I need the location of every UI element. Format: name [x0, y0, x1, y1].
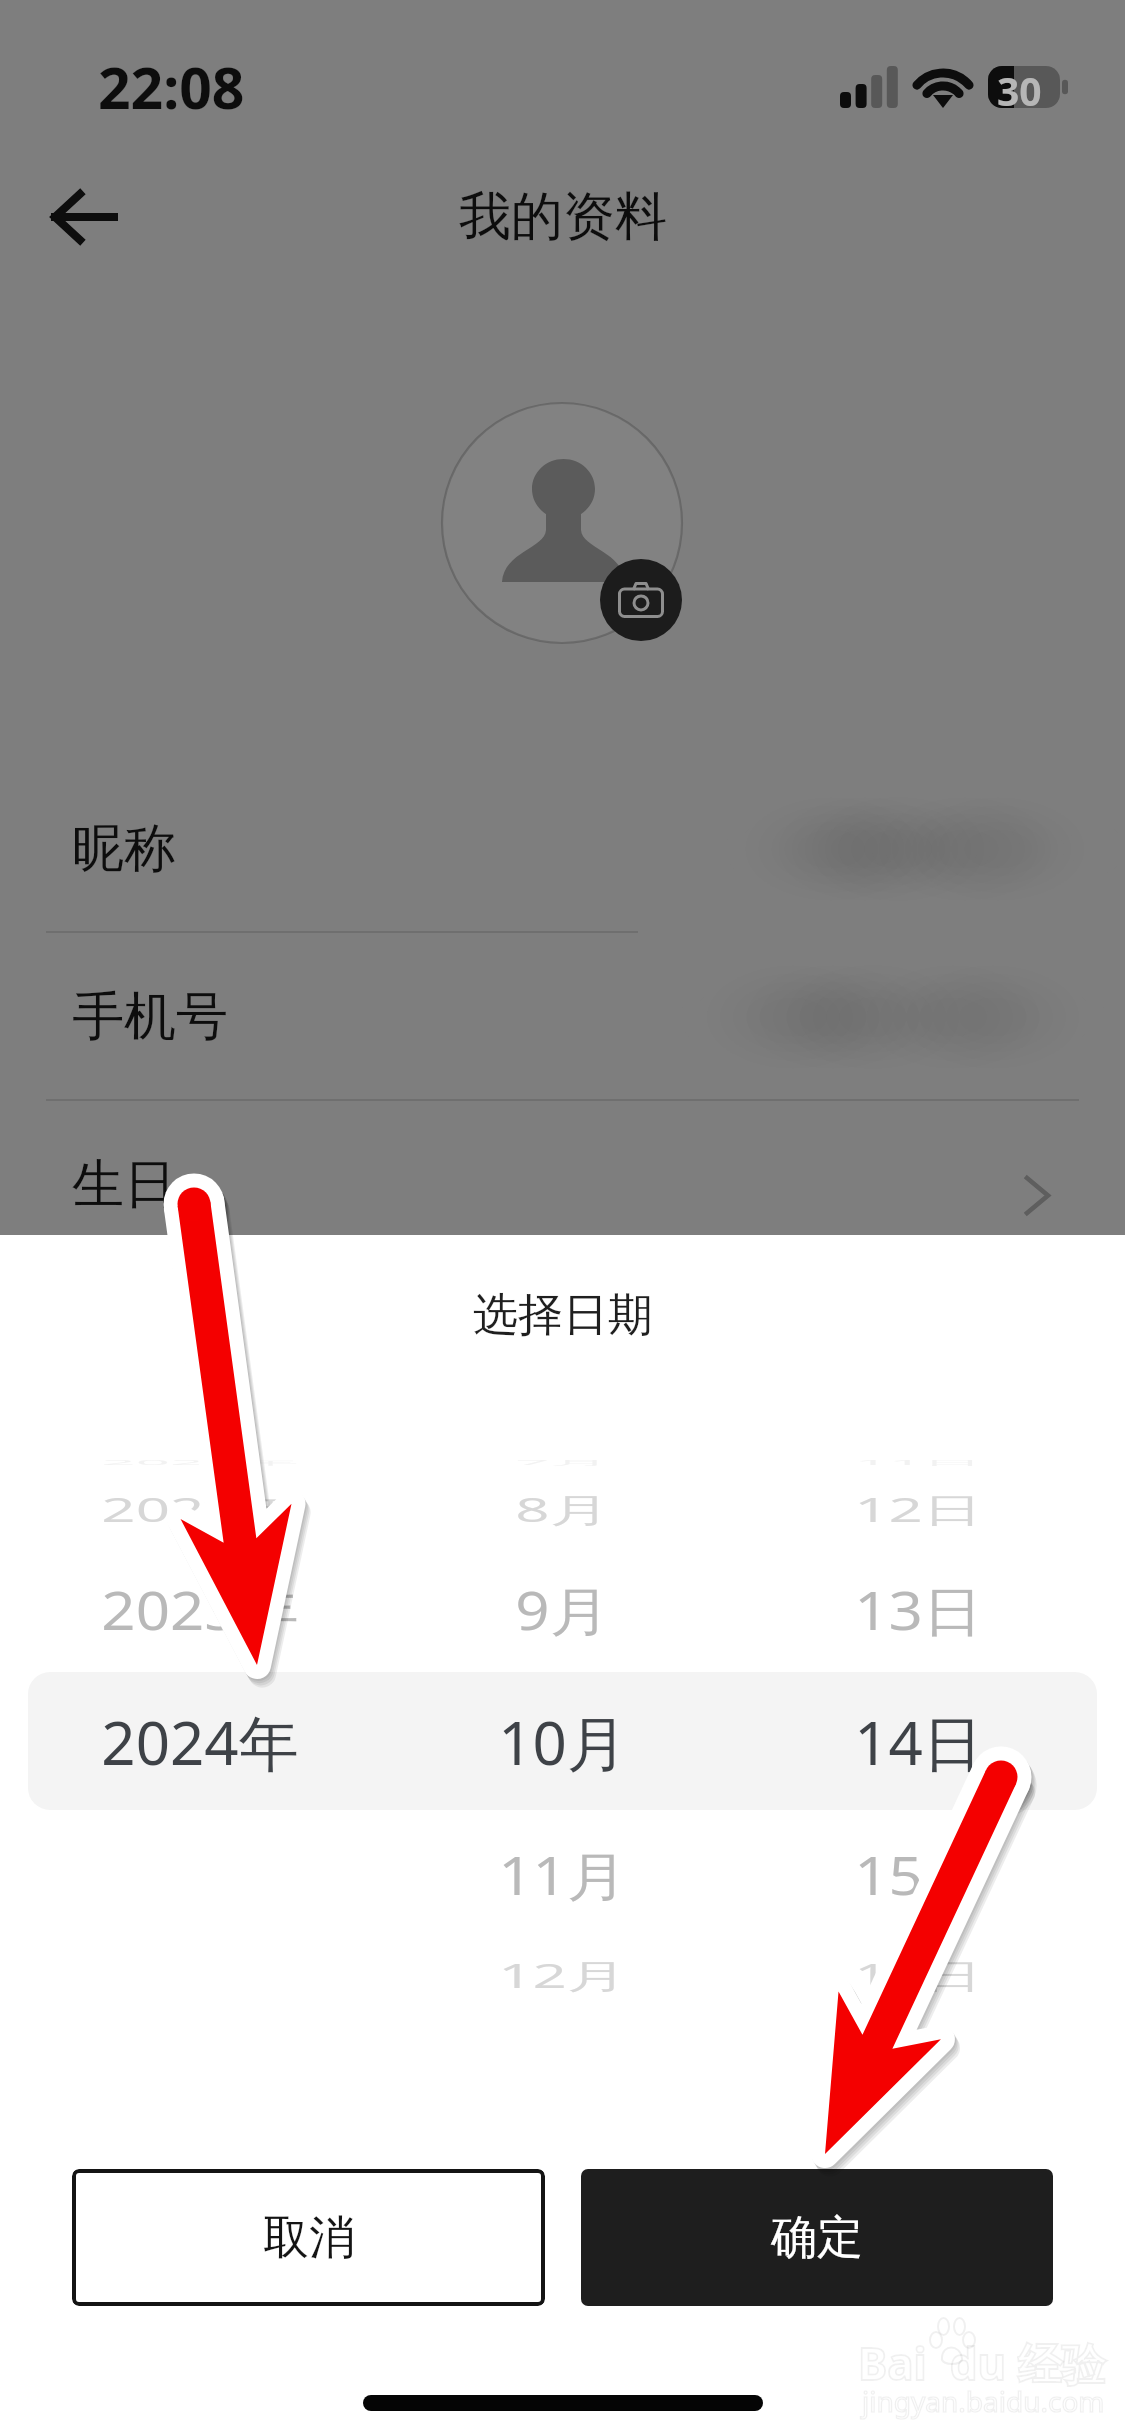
staticText: 12月 — [498, 1952, 627, 1998]
button[interactable]: 15日 — [718, 1831, 1118, 1919]
button[interactable]: 12日 — [718, 1481, 1118, 1537]
staticText: 10月 — [498, 1701, 627, 1783]
button[interactable]: 昵称 — [0, 765, 1125, 933]
button[interactable]: 14日 — [718, 1692, 1118, 1792]
staticText: 15日 — [854, 1839, 983, 1911]
staticText: 生日 — [72, 1152, 176, 1218]
button[interactable]: 2021年 — [0, 1458, 400, 1468]
staticText: 9月 — [515, 1574, 610, 1646]
staticText: 30 — [997, 64, 1042, 117]
button[interactable]: 13日 — [718, 1566, 1118, 1654]
button[interactable]: 手机号 — [0, 933, 1125, 1101]
button[interactable]: 2024年 — [0, 1692, 400, 1792]
staticText: 确定 — [771, 2209, 863, 2267]
staticText: 13日 — [854, 1574, 983, 1646]
button[interactable]: Back — [14, 152, 134, 282]
button[interactable]: 8月 — [362, 1481, 762, 1537]
staticText: 选择日期 — [473, 1287, 653, 1344]
button[interactable]: 确定 — [581, 2169, 1053, 2306]
staticText: 2023年 — [101, 1574, 299, 1646]
button[interactable]: 10月 — [362, 1692, 762, 1792]
button[interactable]: 16日 — [718, 1947, 1118, 2003]
staticText: 手机号 — [72, 984, 228, 1050]
button[interactable]: Change photo — [600, 559, 682, 641]
staticText: 取消 — [263, 2209, 355, 2267]
button[interactable]: 9月 — [362, 1566, 762, 1654]
staticText: 14日 — [854, 1701, 983, 1783]
button[interactable]: 2023年 — [0, 1566, 400, 1654]
staticText: 16日 — [854, 1952, 983, 1998]
staticText: Bai du 经验 — [858, 2333, 1106, 2393]
staticText: 11日 — [854, 1459, 983, 1467]
staticText: 昵称 — [72, 816, 176, 882]
staticText: 我的资料 — [459, 184, 667, 250]
staticText: 2024年 — [101, 1701, 299, 1783]
button[interactable]: 生日 — [0, 1101, 1125, 1269]
staticText: 2022年 — [101, 1486, 299, 1532]
staticText: 12日 — [854, 1486, 983, 1532]
staticText: 8月 — [515, 1486, 610, 1532]
button[interactable]: 11月 — [362, 1831, 762, 1919]
staticText: 22:08 — [98, 48, 245, 126]
staticText: jingyan.baidu.com — [862, 2382, 1105, 2420]
staticText: 2021年 — [101, 1459, 299, 1467]
button[interactable]: 2022年 — [0, 1481, 400, 1537]
button[interactable]: 12月 — [362, 1947, 762, 2003]
button[interactable]: 取消 — [72, 2169, 545, 2306]
staticText: 7月 — [515, 1459, 610, 1467]
staticText: 11月 — [498, 1839, 627, 1911]
